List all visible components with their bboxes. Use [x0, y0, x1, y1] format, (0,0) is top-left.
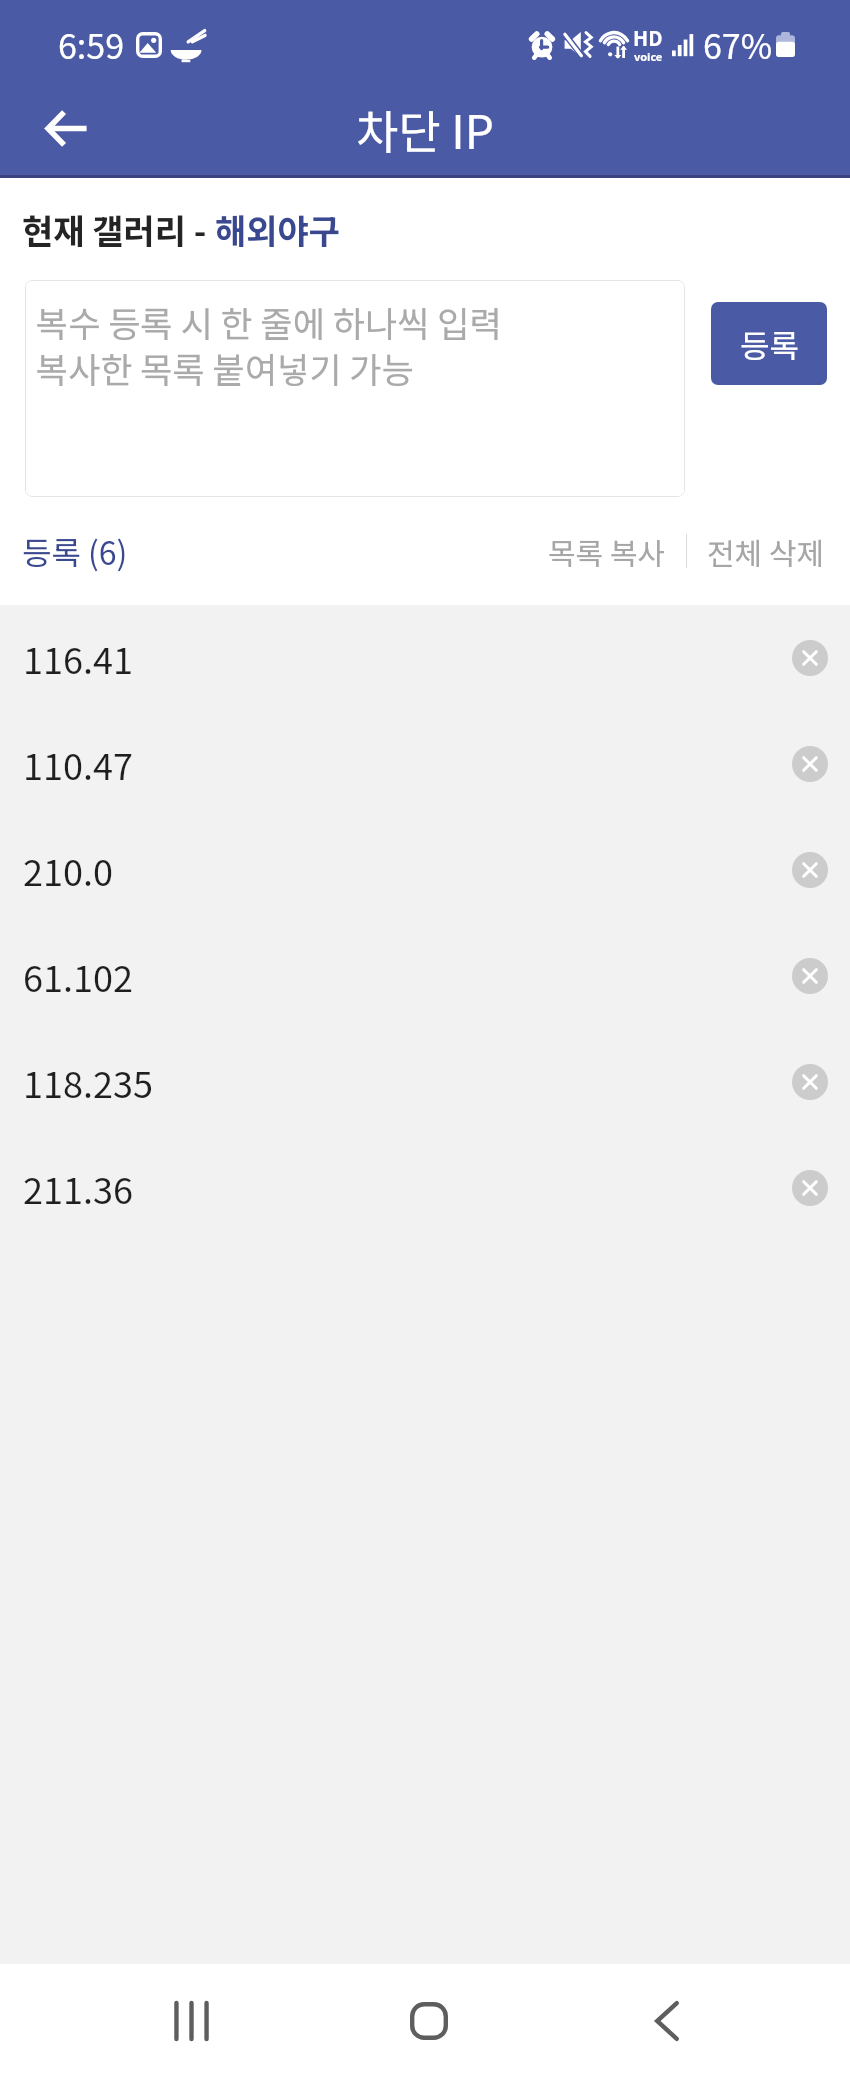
- button[interactable]: 118.235: [0, 1029, 850, 1135]
- button[interactable]: 110.47: [0, 711, 850, 817]
- staticText: 전체 삭제: [707, 530, 825, 573]
- button[interactable]: Delete: [786, 846, 834, 894]
- staticText: 67%: [703, 20, 773, 69]
- button[interactable]: Delete: [786, 952, 834, 1000]
- staticText: 116.41: [23, 632, 133, 684]
- button[interactable]: 61.102: [0, 923, 850, 1029]
- button[interactable]: Delete: [786, 1164, 834, 1212]
- button[interactable]: 116.41: [0, 605, 850, 711]
- staticText: 복수 등록 시 한 줄에 하나씩 입력 복사한 목록 붙여넣기 가능: [36, 296, 502, 393]
- staticText: 차단 IP: [356, 96, 494, 163]
- button[interactable]: Back: [30, 92, 102, 164]
- button[interactable]: Delete: [786, 634, 834, 682]
- button[interactable]: Back: [595, 1964, 739, 2078]
- staticText: 61.102: [23, 950, 133, 1002]
- staticText: 6:59: [58, 20, 125, 69]
- button[interactable]: Delete: [786, 1058, 834, 1106]
- button[interactable]: 211.36: [0, 1135, 850, 1241]
- button[interactable]: 목록 복사: [538, 497, 676, 605]
- button[interactable]: 등록 (6): [0, 497, 142, 605]
- button[interactable]: Delete: [786, 740, 834, 788]
- staticText: 목록 복사: [548, 530, 666, 573]
- button[interactable]: Recents: [119, 1964, 263, 2078]
- staticText: 118.235: [23, 1056, 153, 1108]
- button[interactable]: 210.0: [0, 817, 850, 923]
- staticText: 해외야구: [215, 205, 341, 254]
- staticText: HD: [633, 23, 663, 52]
- staticText: 211.36: [23, 1162, 133, 1214]
- button[interactable]: 등록: [711, 302, 827, 385]
- button[interactable]: 복수 등록 시 한 줄에 하나씩 입력 복사한 목록 붙여넣기 가능: [25, 280, 685, 497]
- staticText: 등록: [740, 321, 799, 367]
- staticText: voice: [634, 48, 663, 64]
- staticText: 현재 갤러리 -: [22, 205, 215, 254]
- button[interactable]: 전체 삭제: [697, 497, 850, 605]
- staticText: 210.0: [23, 844, 113, 896]
- button[interactable]: Home: [357, 1964, 501, 2078]
- staticText: 110.47: [23, 738, 133, 790]
- staticText: 등록 (6): [22, 528, 128, 574]
